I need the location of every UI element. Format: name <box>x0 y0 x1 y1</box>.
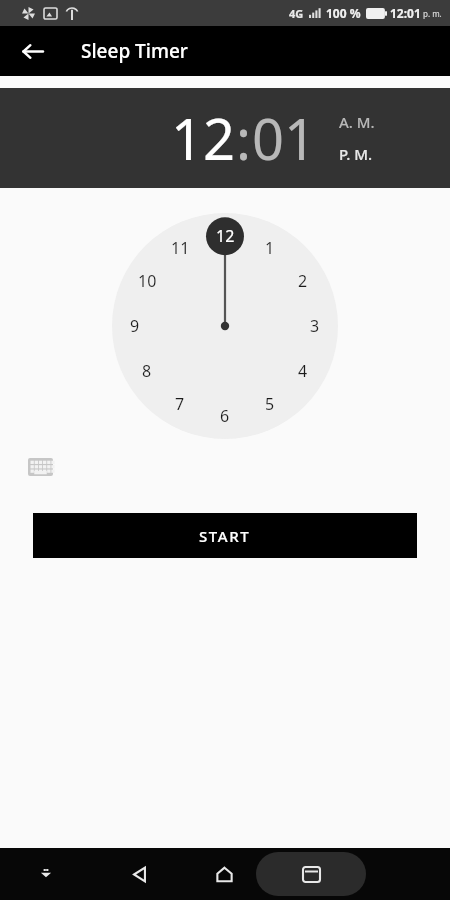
staticText: Sleep Timer <box>81 38 188 64</box>
staticText: 1 <box>265 237 275 259</box>
staticText: 3 <box>310 315 320 337</box>
button[interactable]: START <box>33 513 417 558</box>
staticText: 9 <box>130 315 140 337</box>
button[interactable]: P. M. <box>339 144 373 164</box>
button[interactable]: 01 <box>252 100 317 176</box>
staticText: 4 <box>298 360 308 382</box>
button[interactable]: Hide keyboard <box>24 852 68 896</box>
staticText: 01 <box>252 100 317 176</box>
staticText: : <box>236 100 252 176</box>
staticText: 12 <box>216 225 235 247</box>
button[interactable]: Recent apps <box>256 852 366 896</box>
staticText: START <box>199 526 251 546</box>
staticText: 4G <box>289 6 304 21</box>
staticText: 12 <box>171 100 236 176</box>
staticText: P. M. <box>339 144 373 164</box>
button[interactable]: Back <box>116 851 162 897</box>
staticText: 5 <box>265 393 275 415</box>
staticText: 100 % <box>326 5 361 21</box>
staticText: 8 <box>142 360 152 382</box>
button[interactable]: A. M. <box>339 112 375 132</box>
staticText: 2 <box>298 270 308 292</box>
button[interactable]: Home <box>201 851 247 897</box>
staticText: p. m. <box>423 8 442 19</box>
staticText: 7 <box>175 393 185 415</box>
staticText: 10 <box>138 270 157 292</box>
button[interactable]: Keyboard input <box>26 456 54 478</box>
button[interactable]: Back <box>10 29 54 73</box>
button[interactable]: 12 <box>171 100 236 176</box>
staticText: 6 <box>220 405 230 427</box>
staticText: 12:01 <box>390 5 421 21</box>
staticText: A. M. <box>339 112 375 132</box>
staticText: 11 <box>171 237 190 259</box>
